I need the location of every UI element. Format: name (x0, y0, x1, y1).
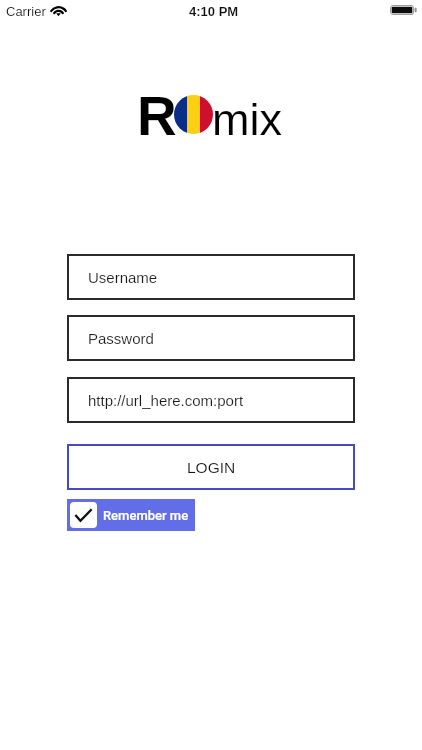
staticText: Carrier (6, 4, 46, 19)
staticText: mix (212, 94, 282, 144)
other: Battery full (390, 5, 417, 15)
staticText: LOGIN (187, 459, 236, 476)
button[interactable]: Password (67, 315, 355, 361)
staticText: R (137, 85, 177, 146)
other: Wi-Fi (51, 5, 66, 16)
button[interactable]: Username (67, 254, 355, 300)
button[interactable]: Remember me (67, 499, 195, 531)
staticText: 4:10 PM (189, 4, 239, 19)
staticText: Remember me (103, 508, 189, 523)
staticText: http://url_here.com:port (88, 392, 244, 409)
button[interactable]: http://url_here.com:port (67, 377, 355, 423)
button[interactable]: LOGIN (67, 444, 355, 490)
staticText: Username (88, 269, 158, 286)
staticText: Password (88, 330, 154, 347)
